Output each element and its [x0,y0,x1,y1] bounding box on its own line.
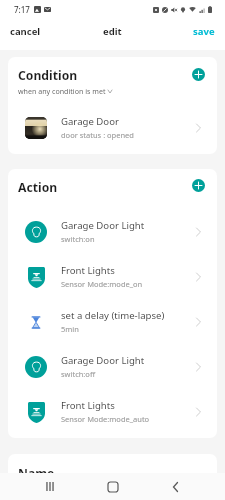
button[interactable]: Add [192,179,205,192]
button[interactable]: set a delay (time-lapse) [8,299,217,344]
staticText: switch:off [61,369,96,379]
staticText: 7:17 [14,4,30,15]
staticText: 5min [61,324,79,334]
staticText: Action [18,179,58,196]
staticText: door status : opened [61,130,134,140]
staticText: Sensor Mode:mode_auto [61,414,150,424]
staticText: switch:on [61,234,95,244]
button[interactable]: Garage Door Light [8,344,217,389]
staticText: set a delay (time-lapse) [61,309,165,322]
button[interactable]: Back [155,473,195,500]
staticText: save [193,25,215,38]
staticText: Sensor Mode:mode_on [61,279,143,289]
staticText: Condition [18,67,78,84]
staticText: when any condition is met [18,86,106,96]
button[interactable]: Add [192,68,205,81]
staticText: Garage Door [61,115,119,128]
button[interactable]: Front Lights [8,389,217,434]
button[interactable]: Front Lights [8,254,217,299]
staticText: Name [18,465,55,482]
staticText: Garage Door Light [61,354,145,367]
button[interactable]: Recent apps [30,473,70,500]
button[interactable]: cancel [0,18,55,44]
button[interactable]: Garage Door [8,105,217,150]
staticText: edit [103,25,122,38]
button[interactable]: save [175,18,225,44]
staticText: Garage Door Light [61,219,145,232]
button[interactable]: Garage Door Light [8,209,217,254]
button[interactable]: Home [93,473,133,500]
staticText: cancel [10,25,41,38]
staticText: Front Lights [61,399,115,412]
staticText: Front Lights [61,264,115,277]
